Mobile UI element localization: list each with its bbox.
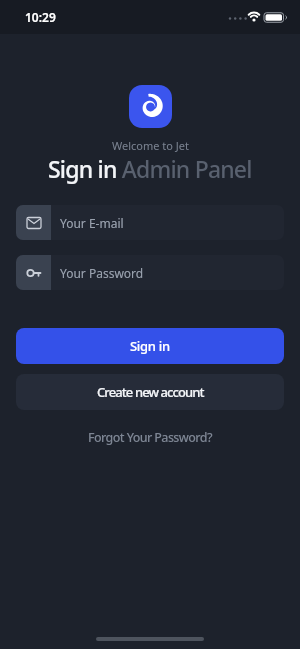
- staticText: Create new account: [97, 383, 204, 401]
- button[interactable]: Forgot Your Password?: [88, 429, 212, 446]
- staticText: Sign in: [130, 337, 170, 355]
- staticText: Welcome to Jet: [112, 138, 189, 153]
- button[interactable]: Your Password: [16, 255, 284, 290]
- staticText: Forgot Your Password?: [88, 429, 212, 446]
- staticText: 10:29: [25, 9, 56, 25]
- staticText: Your E-mail: [60, 215, 124, 231]
- staticText: Sign in Admin Panel: [48, 153, 252, 184]
- button[interactable]: Your E-mail: [16, 205, 284, 240]
- button[interactable]: Create new account: [16, 374, 284, 410]
- staticText: Your Password: [60, 265, 144, 281]
- button[interactable]: Sign in: [16, 328, 284, 364]
